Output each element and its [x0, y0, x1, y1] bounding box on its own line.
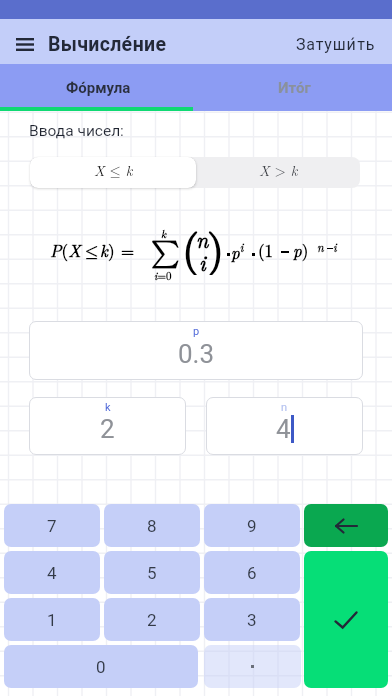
staticText: 9 — [247, 516, 257, 536]
staticText: 1 — [47, 610, 57, 630]
staticText: 0.3 — [178, 339, 215, 369]
button[interactable]: X > k — [196, 157, 360, 188]
button[interactable]: 0 — [4, 645, 198, 688]
staticText: 3 — [247, 610, 257, 630]
staticText: ≤ — [85, 243, 99, 260]
staticText: Ввода чисел: — [29, 122, 124, 140]
staticText: (1 — [258, 238, 274, 262]
staticText: 2 — [100, 414, 115, 444]
staticText: n — [317, 238, 324, 255]
staticText: p — [193, 325, 200, 338]
staticText: Фо́рмула — [66, 79, 131, 97]
staticText: ) — [108, 238, 115, 262]
button[interactable]: k — [29, 397, 186, 455]
staticText: pi — [231, 238, 244, 264]
staticText: Вычисле́ние — [48, 33, 167, 56]
button[interactable]: Ито́г — [196, 64, 392, 111]
staticText: i — [199, 246, 206, 277]
button[interactable] — [204, 645, 301, 688]
button[interactable]: Фо́рмула — [0, 64, 196, 111]
button[interactable]: 9 — [204, 504, 300, 547]
staticText: 5 — [147, 563, 157, 583]
staticText: ∑ — [151, 239, 180, 266]
staticText: 8 — [147, 516, 157, 536]
staticText: n — [196, 223, 209, 254]
button[interactable]: Затуши́ть — [296, 35, 376, 54]
button[interactable]: 6 — [204, 551, 300, 594]
staticText: k — [100, 238, 108, 262]
button[interactable]: 4 — [4, 551, 100, 594]
staticText: Ито́г — [278, 79, 311, 97]
staticText: X ≤ k — [94, 160, 133, 181]
staticText: X > k — [259, 160, 298, 181]
button[interactable] — [16, 38, 34, 51]
staticText: 7 — [47, 516, 57, 536]
staticText: i=0 — [154, 268, 172, 284]
button[interactable]: p — [29, 321, 363, 380]
button[interactable]: 3 — [204, 598, 300, 641]
staticText: P(X — [50, 238, 81, 262]
button[interactable] — [304, 551, 388, 688]
staticText: ( — [182, 215, 200, 275]
button[interactable]: 5 — [104, 551, 200, 594]
staticText: = — [121, 238, 135, 262]
staticText: ) — [207, 215, 225, 275]
staticText: n — [281, 401, 288, 414]
staticText: 4 — [47, 563, 57, 583]
button[interactable]: 8 — [104, 504, 200, 547]
staticText: 4 — [276, 414, 291, 444]
button[interactable]: 7 — [4, 504, 100, 547]
button[interactable]: 2 — [104, 598, 200, 641]
staticText: k — [161, 226, 167, 242]
staticText: 2 — [147, 610, 157, 630]
staticText: p) — [293, 238, 309, 262]
button[interactable] — [304, 504, 388, 547]
button[interactable]: X ≤ k — [30, 157, 196, 188]
button[interactable]: n — [206, 397, 363, 455]
button[interactable]: 1 — [4, 598, 100, 641]
staticText: k — [105, 401, 111, 414]
staticText: 0 — [96, 657, 106, 677]
staticText: i — [333, 238, 337, 255]
staticText: 6 — [247, 563, 257, 583]
